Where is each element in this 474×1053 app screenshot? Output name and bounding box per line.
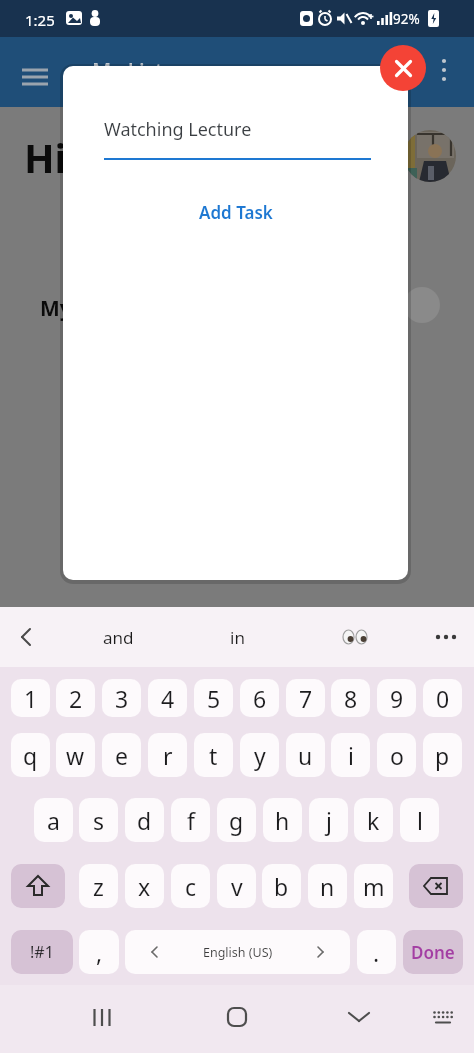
- button[interactable]: v: [217, 864, 256, 908]
- button[interactable]: 0: [423, 679, 462, 717]
- button[interactable]: 6: [240, 679, 279, 717]
- staticText: c: [185, 871, 197, 902]
- button[interactable]: and: [60, 617, 176, 657]
- staticText: My: [40, 294, 72, 323]
- button[interactable]: Watching Lecture: [103, 106, 371, 162]
- staticText: 4: [161, 683, 175, 714]
- button[interactable]: i: [331, 733, 370, 777]
- button[interactable]: x: [125, 864, 164, 908]
- button[interactable]: e: [102, 733, 141, 777]
- staticText: ,: [96, 937, 103, 968]
- staticText: y: [254, 740, 266, 771]
- staticText: 2: [69, 683, 83, 714]
- button[interactable]: s: [79, 798, 118, 842]
- button[interactable]: j: [309, 798, 348, 842]
- button[interactable]: o: [377, 733, 416, 777]
- button[interactable]: z: [79, 864, 118, 908]
- staticText: in: [230, 626, 245, 649]
- button[interactable]: !#1: [11, 930, 73, 974]
- button[interactable]: [409, 864, 463, 908]
- staticText: x: [138, 871, 151, 902]
- staticText: p: [435, 740, 450, 771]
- button[interactable]: q: [11, 733, 50, 777]
- button[interactable]: [424, 1002, 462, 1032]
- button[interactable]: 8: [331, 679, 370, 717]
- staticText: q: [23, 740, 38, 771]
- button[interactable]: c: [171, 864, 210, 908]
- button[interactable]: h: [263, 798, 302, 842]
- button[interactable]: k: [354, 798, 393, 842]
- button[interactable]: English (US): [125, 930, 350, 974]
- button[interactable]: [80, 1000, 124, 1034]
- staticText: 5: [207, 683, 221, 714]
- button[interactable]: Add Task: [63, 192, 408, 232]
- staticText: 6: [253, 683, 267, 714]
- staticText: z: [93, 871, 104, 902]
- button[interactable]: [215, 1000, 259, 1034]
- staticText: Watching Lecture: [104, 117, 252, 142]
- button[interactable]: [426, 621, 466, 653]
- button[interactable]: [380, 45, 426, 91]
- staticText: 1:25: [25, 10, 55, 30]
- staticText: 0: [436, 683, 450, 714]
- button[interactable]: 9: [377, 679, 416, 717]
- staticText: v: [231, 871, 243, 902]
- button[interactable]: n: [308, 864, 347, 908]
- button[interactable]: 1: [11, 679, 50, 717]
- button[interactable]: u: [286, 733, 325, 777]
- button[interactable]: ,: [79, 930, 119, 974]
- button[interactable]: p: [423, 733, 462, 777]
- button[interactable]: in: [179, 617, 295, 657]
- staticText: a: [47, 805, 60, 836]
- staticText: Hi: [24, 130, 67, 184]
- button[interactable]: [8, 621, 44, 653]
- staticText: English (US): [203, 944, 273, 961]
- staticText: and: [103, 626, 134, 649]
- button[interactable]: b: [262, 864, 301, 908]
- button[interactable]: r: [148, 733, 187, 777]
- button[interactable]: g: [217, 798, 256, 842]
- staticText: o: [390, 740, 404, 771]
- button[interactable]: w: [56, 733, 95, 777]
- button[interactable]: m: [354, 864, 393, 908]
- button[interactable]: f: [171, 798, 210, 842]
- staticText: m: [363, 871, 385, 902]
- button[interactable]: [297, 617, 413, 657]
- staticText: e: [115, 740, 128, 771]
- staticText: f: [187, 805, 195, 836]
- staticText: 92%: [393, 10, 420, 28]
- staticText: r: [163, 740, 173, 771]
- staticText: n: [320, 871, 335, 902]
- staticText: 7: [299, 683, 313, 714]
- staticText: My List: [92, 57, 163, 86]
- button[interactable]: [12, 62, 56, 92]
- button[interactable]: [337, 1000, 381, 1034]
- button[interactable]: 7: [286, 679, 325, 717]
- button[interactable]: 4: [148, 679, 187, 717]
- staticText: w: [66, 740, 85, 771]
- staticText: u: [298, 740, 313, 771]
- staticText: 3: [115, 683, 129, 714]
- button[interactable]: .: [357, 930, 396, 974]
- button[interactable]: d: [125, 798, 164, 842]
- button[interactable]: a: [34, 798, 73, 842]
- staticText: Add Task: [199, 201, 273, 224]
- button[interactable]: y: [240, 733, 279, 777]
- button[interactable]: 5: [194, 679, 233, 717]
- staticText: 8: [344, 683, 358, 714]
- button[interactable]: t: [194, 733, 233, 777]
- staticText: s: [93, 805, 105, 836]
- staticText: !#1: [30, 941, 54, 963]
- button[interactable]: Done: [403, 930, 463, 974]
- staticText: l: [417, 805, 423, 836]
- staticText: 1: [24, 683, 38, 714]
- button[interactable]: 3: [102, 679, 141, 717]
- staticText: .: [373, 937, 380, 968]
- button[interactable]: [428, 47, 464, 95]
- staticText: Done: [411, 941, 455, 964]
- button[interactable]: 2: [56, 679, 95, 717]
- button[interactable]: [11, 864, 65, 908]
- staticText: 9: [390, 683, 404, 714]
- button[interactable]: l: [400, 798, 439, 842]
- staticText: d: [137, 805, 152, 836]
